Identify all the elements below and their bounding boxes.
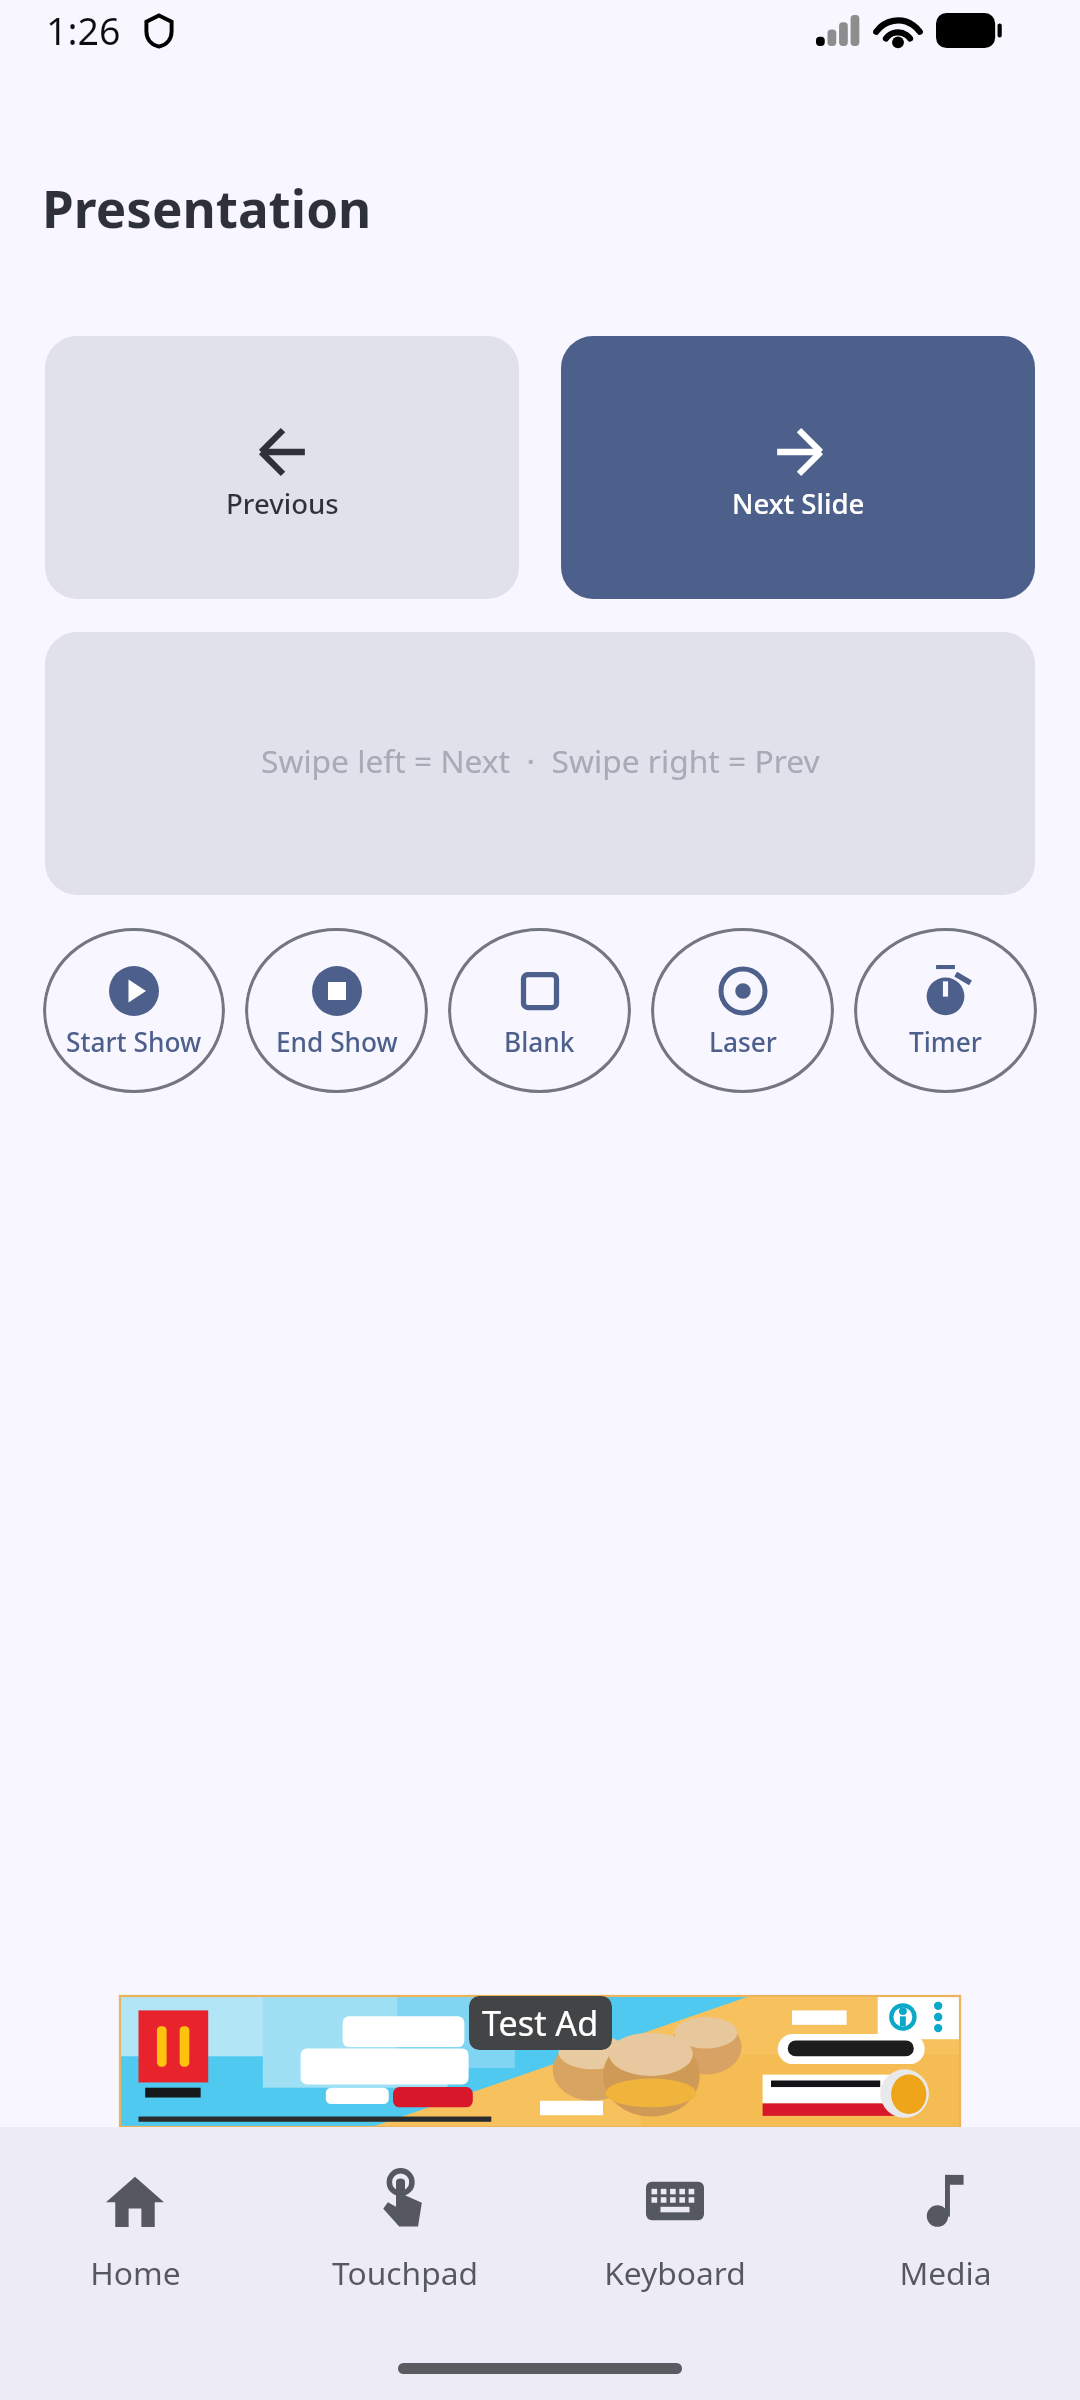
other: Timer <box>920 965 971 1016</box>
button[interactable]: End Show <box>245 928 428 1093</box>
button[interactable]: Touchpad <box>270 2172 540 2294</box>
button[interactable]: Keyboard <box>540 2172 810 2294</box>
button[interactable]: Timer <box>854 928 1037 1093</box>
other: Laser <box>718 966 768 1016</box>
staticText: Media <box>899 2251 992 2294</box>
button[interactable]: Swipe left = Next · Swipe right = Prev <box>45 632 1035 895</box>
button[interactable]: Home <box>0 2172 270 2294</box>
staticText: End Show <box>276 1024 398 1060</box>
staticText: Start Show <box>66 1024 202 1060</box>
staticText: Next Slide <box>732 485 865 523</box>
staticText: Test Ad <box>482 2000 599 2046</box>
other: Blank <box>515 966 565 1016</box>
staticText: Previous <box>226 485 339 523</box>
button[interactable]: Start Show <box>43 928 225 1093</box>
staticText: Blank <box>504 1024 575 1060</box>
staticText: 1:26 <box>46 5 121 56</box>
button[interactable]: Media <box>810 2172 1080 2294</box>
staticText: Touchpad <box>332 2251 478 2294</box>
staticText: Timer <box>909 1024 982 1060</box>
staticText: Laser <box>709 1024 777 1060</box>
other: Start Show <box>109 966 159 1016</box>
button[interactable]: Laser <box>651 928 834 1093</box>
staticText: Home <box>90 2251 181 2294</box>
button[interactable]: Previous <box>45 336 519 599</box>
button[interactable]: Next Slide <box>561 336 1035 599</box>
button[interactable]: Test Ad <box>120 1996 960 2127</box>
staticText: Presentation <box>42 173 372 243</box>
button[interactable]: Blank <box>448 928 631 1093</box>
other: End Show <box>312 966 362 1016</box>
staticText: Swipe left = Next · Swipe right = Prev <box>261 739 820 782</box>
staticText: Keyboard <box>604 2251 746 2294</box>
